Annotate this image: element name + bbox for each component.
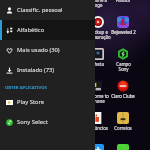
staticText: Backup e restauração: [86, 29, 111, 40]
staticText: Anúncios: [89, 125, 108, 131]
button[interactable]: Correios: [110, 112, 136, 131]
staticText: Instalado (73): [17, 66, 55, 74]
staticText: Assistir: [116, 0, 131, 3]
staticText: Alfabético: [17, 26, 45, 34]
button[interactable]: Assistir: [110, 0, 136, 3]
staticText: OBTER APLICATIVOS: [5, 85, 47, 91]
button[interactable]: Play Store: [0, 92, 95, 112]
button[interactable]: Anúncios: [85, 112, 111, 131]
staticText: Theta: [92, 61, 104, 67]
button[interactable]: Instalado (73): [0, 60, 95, 80]
button[interactable]: Claro Clube: [110, 80, 136, 99]
button[interactable]: Classific. pessoal: [0, 0, 95, 20]
staticText: Claro Clube: [111, 93, 135, 99]
staticText: Mais usado (30): [17, 46, 60, 54]
button[interactable]: [110, 144, 136, 150]
staticText: Chrome to phone: [87, 93, 109, 104]
staticText: Correios: [114, 125, 132, 131]
staticText: Sony Select: [17, 118, 48, 126]
staticText: Classific. pessoal: [17, 6, 63, 14]
staticText: Campo Sony: [116, 61, 131, 72]
button[interactable]: [85, 144, 111, 150]
button[interactable]: Mais usado (30): [0, 40, 95, 60]
button[interactable]: Alfabético: [0, 20, 95, 40]
button[interactable]: Campo Sony: [110, 48, 136, 72]
button[interactable]: Assine a ogo: [85, 0, 111, 8]
button[interactable]: Chrome to phone: [85, 80, 111, 104]
button[interactable]: Theta: [85, 48, 111, 67]
staticText: Bejeweled 2: [111, 29, 136, 35]
button[interactable]: Sony Select: [0, 112, 95, 132]
button[interactable]: Backup e restauração: [85, 16, 111, 40]
staticText: Play Store: [17, 98, 45, 106]
staticText: Assine a ogo: [90, 0, 107, 8]
button[interactable]: Bejeweled 2: [110, 16, 136, 35]
